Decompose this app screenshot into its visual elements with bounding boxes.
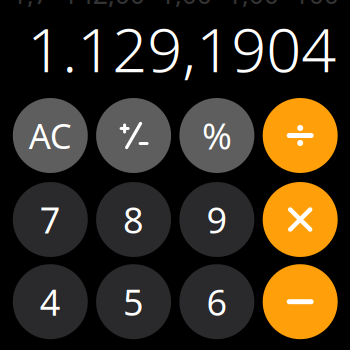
staticText: 1,7 142,00×1,00×1,00×100: [12, 0, 339, 11]
staticText: 5: [123, 278, 144, 326]
staticText: 9: [206, 196, 227, 243]
button[interactable]: Multiply: [263, 182, 338, 257]
button[interactable]: %: [179, 98, 254, 173]
staticText: 6: [206, 278, 227, 326]
staticText: %: [202, 112, 232, 159]
staticText: 7: [40, 196, 61, 243]
button[interactable]: 4: [13, 264, 88, 339]
staticText: 1.129,1904: [27, 8, 336, 89]
button[interactable]: 7: [13, 182, 88, 257]
button[interactable]: Change sign: [96, 98, 171, 173]
staticText: 8: [123, 196, 144, 243]
button[interactable]: Divide: [263, 98, 338, 173]
button[interactable]: 6: [179, 264, 254, 339]
button[interactable]: 8: [96, 182, 171, 257]
button[interactable]: AC: [13, 98, 88, 173]
button[interactable]: 5: [96, 264, 171, 339]
button[interactable]: Subtract: [263, 264, 338, 339]
staticText: 4: [40, 278, 61, 326]
button[interactable]: 9: [179, 182, 254, 257]
staticText: AC: [29, 112, 72, 158]
